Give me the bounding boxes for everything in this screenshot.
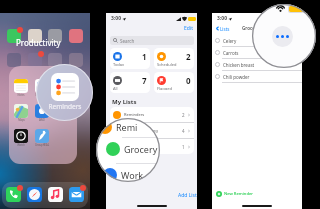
staticText: Maps: [18, 118, 25, 122]
button[interactable]: Edit: [182, 25, 194, 32]
staticText: AWD: [39, 118, 45, 122]
staticText: Work: [124, 144, 134, 149]
staticText: Grocery Shopping: [124, 128, 158, 133]
staticText: 1: [182, 144, 185, 150]
button[interactable]: [51, 73, 79, 101]
button[interactable]: [56, 129, 70, 143]
button[interactable]: Chicken breast: [212, 59, 302, 71]
staticText: Reminders: [35, 93, 49, 97]
button[interactable]: Work: [110, 139, 194, 154]
staticText: 0: [186, 75, 191, 86]
staticText: New Reminder: [224, 191, 254, 197]
staticText: Add List: [178, 192, 197, 199]
button[interactable]: [56, 104, 70, 118]
button[interactable]: [56, 79, 70, 93]
staticText: 3:00: [217, 15, 227, 22]
button[interactable]: [69, 187, 84, 202]
staticText: Chili powder: [223, 74, 250, 80]
staticText: Carrots: [223, 50, 239, 56]
staticText: 1: [142, 51, 147, 62]
button[interactable]: [48, 187, 63, 202]
button[interactable]: [14, 79, 28, 93]
staticText: 7: [142, 75, 147, 86]
button[interactable]: [48, 53, 62, 67]
button[interactable]: [35, 129, 49, 143]
button[interactable]: [28, 53, 42, 67]
staticText: Chicken breast: [223, 62, 255, 68]
staticText: Remi: [116, 121, 138, 133]
button[interactable]: [7, 53, 21, 67]
staticText: Grocery S: [124, 143, 160, 155]
button[interactable]: Grocery Shopping: [110, 123, 194, 139]
staticText: Today: [113, 62, 125, 66]
button[interactable]: Search: [113, 36, 194, 45]
staticText: Scheduled: [157, 62, 177, 66]
button[interactable]: 2: [154, 48, 194, 69]
button[interactable]: [14, 129, 28, 143]
button[interactable]: Chili powder: [212, 71, 302, 83]
staticText: Edit: [184, 25, 193, 32]
staticText: Reminders: [124, 112, 145, 117]
staticText: 2: [182, 112, 185, 118]
staticText: 3:00: [111, 15, 121, 22]
staticText: GroupHEALTH: [35, 143, 49, 147]
button[interactable]: New Reminder: [216, 189, 254, 198]
button[interactable]: Reminders: [110, 107, 194, 123]
button[interactable]: Carrots: [212, 47, 302, 59]
button[interactable]: [6, 187, 21, 202]
staticText: Work: [121, 169, 144, 181]
button[interactable]: [14, 104, 28, 118]
button[interactable]: Add List: [176, 191, 198, 200]
button[interactable]: [69, 53, 83, 67]
button[interactable]: [35, 79, 49, 93]
staticText: Flagged: [157, 86, 172, 90]
staticText: Celery: [223, 38, 237, 44]
button[interactable]: [69, 29, 83, 43]
staticText: Watch: [17, 143, 25, 147]
staticText: My Lists: [112, 98, 137, 106]
button[interactable]: [28, 29, 42, 43]
staticText: Reminders: [41, 102, 89, 111]
button[interactable]: [48, 29, 62, 43]
button[interactable]: Celery: [212, 35, 302, 47]
staticText: Productivity: [16, 37, 61, 48]
button[interactable]: Lists: [215, 24, 230, 33]
staticText: 2: [186, 51, 191, 62]
button[interactable]: [35, 104, 49, 118]
staticText: Lists: [220, 26, 230, 32]
staticText: Grocery Shopping: [242, 25, 282, 31]
staticText: Notes: [17, 93, 25, 97]
staticText: Search: [120, 38, 135, 44]
button[interactable]: 1: [110, 48, 150, 69]
staticText: All: [113, 86, 118, 90]
button[interactable]: 0: [154, 72, 194, 93]
button[interactable]: 7: [110, 72, 150, 93]
button[interactable]: [27, 187, 42, 202]
button[interactable]: [7, 29, 21, 43]
staticText: 4: [182, 128, 185, 134]
